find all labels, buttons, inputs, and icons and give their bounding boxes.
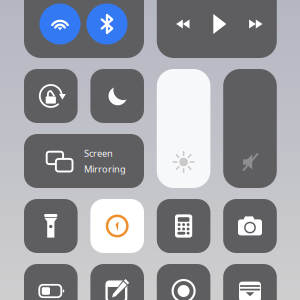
staticText: Screen [84, 147, 113, 159]
button[interactable]: Screen [0, 0, 300, 300]
button[interactable]: Wallet [0, 0, 300, 300]
staticText: Mirroring [84, 163, 126, 175]
button[interactable]: Flashlight [0, 0, 300, 300]
button[interactable] [0, 0, 300, 300]
button[interactable] [0, 0, 300, 300]
button[interactable]: Timer [0, 0, 300, 300]
button[interactable] [0, 0, 300, 300]
button[interactable]: Voice Memos [0, 0, 300, 300]
button[interactable]: Camera [0, 0, 300, 300]
button[interactable]: Notes [0, 0, 300, 300]
button[interactable]: Low Power Mode [0, 0, 300, 300]
button[interactable] [0, 0, 300, 300]
button[interactable] [0, 0, 300, 300]
button[interactable]: Calculator [0, 0, 300, 300]
button[interactable] [0, 0, 300, 300]
